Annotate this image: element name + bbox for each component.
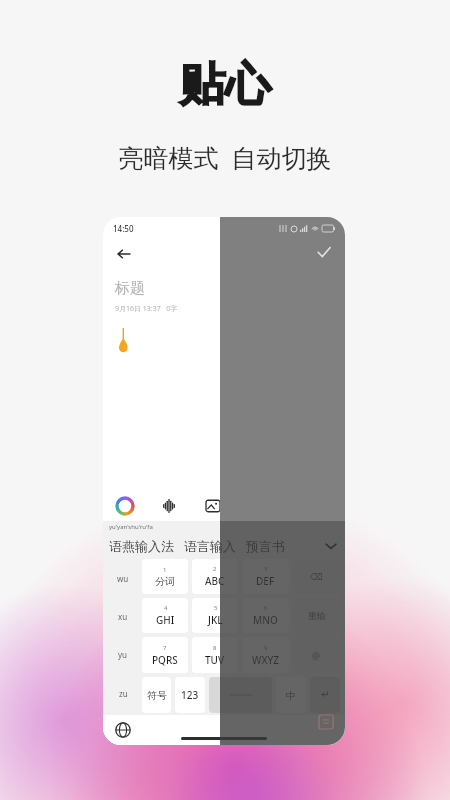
staticText: 5 bbox=[214, 604, 218, 612]
staticText: wu bbox=[117, 573, 129, 584]
staticText: 3 bbox=[264, 565, 268, 573]
button[interactable]: 重输 bbox=[293, 598, 340, 633]
staticText: yu'yan'shu'ru'fa bbox=[109, 523, 153, 531]
button[interactable]: xu bbox=[106, 597, 140, 635]
button[interactable]: 6 bbox=[242, 598, 289, 633]
button[interactable]: 预言书 bbox=[246, 538, 285, 554]
staticText: 符号 bbox=[147, 689, 167, 702]
staticText: TUV bbox=[205, 653, 225, 667]
button[interactable]: 语燕输入法 bbox=[109, 538, 174, 554]
staticText: 贴心 bbox=[179, 56, 271, 114]
button[interactable]: 4 bbox=[142, 598, 188, 633]
button[interactable]: 7 bbox=[142, 637, 188, 673]
button[interactable]: More candidates bbox=[323, 538, 339, 554]
button[interactable]: Back bbox=[113, 243, 135, 265]
button[interactable]: zu bbox=[106, 674, 140, 713]
staticText: xu bbox=[118, 611, 128, 622]
button[interactable]: Switch language bbox=[115, 722, 131, 738]
staticText: 1 bbox=[163, 566, 167, 574]
staticText: 6 bbox=[264, 604, 268, 612]
staticText: ⌫ bbox=[310, 572, 323, 582]
button[interactable]: AI assistant bbox=[115, 496, 135, 516]
staticText: PQRS bbox=[152, 653, 178, 667]
staticText: GHI bbox=[156, 613, 175, 627]
button[interactable]: 8 bbox=[192, 637, 238, 673]
button[interactable]: 3 bbox=[242, 559, 289, 594]
button[interactable]: yu bbox=[106, 635, 140, 674]
button[interactable]: ⌫ bbox=[293, 559, 340, 594]
staticText: 亮暗模式 自动切换 bbox=[118, 140, 332, 174]
staticText: ↵ bbox=[321, 689, 330, 701]
staticText: 9月16日 13:37 0字 bbox=[115, 304, 178, 314]
staticText: 重输 bbox=[308, 610, 326, 621]
staticText: 8 bbox=[213, 644, 217, 652]
staticText: 4 bbox=[164, 604, 168, 612]
button[interactable]: 2 bbox=[192, 559, 238, 594]
staticText: JKL bbox=[208, 613, 223, 627]
staticText: 123 bbox=[181, 688, 199, 702]
button[interactable]: wu bbox=[106, 559, 140, 597]
staticText: @ bbox=[312, 649, 321, 661]
button[interactable]: 9 bbox=[242, 637, 289, 673]
button[interactable]: Voice input bbox=[159, 496, 179, 516]
button[interactable]: 中 bbox=[276, 677, 306, 713]
staticText: zu bbox=[119, 688, 128, 699]
staticText: DEF bbox=[256, 574, 275, 588]
staticText: 2 bbox=[213, 565, 217, 573]
staticText: 14:50 bbox=[113, 223, 134, 234]
button[interactable]: 符号 bbox=[142, 677, 171, 713]
button[interactable]: 语言输入 bbox=[184, 538, 236, 554]
staticText: 标题 bbox=[115, 279, 145, 298]
button[interactable]: 123 bbox=[175, 677, 205, 713]
staticText: ABC bbox=[205, 574, 225, 588]
button[interactable]: Clipboard bbox=[319, 715, 333, 729]
button[interactable]: 1 bbox=[142, 559, 188, 594]
staticText: 中 bbox=[286, 689, 296, 702]
staticText: WXYZ bbox=[252, 653, 280, 667]
staticText: 9 bbox=[264, 644, 268, 652]
staticText: 分词 bbox=[155, 575, 175, 588]
button[interactable]: Insert image bbox=[203, 496, 223, 516]
staticText: 7 bbox=[163, 644, 167, 652]
staticText: MNO bbox=[253, 613, 278, 627]
staticText: yu bbox=[118, 649, 128, 660]
button[interactable]: Confirm bbox=[313, 241, 335, 263]
button[interactable]: 5 bbox=[192, 598, 238, 633]
button[interactable]: Space bbox=[209, 677, 272, 713]
